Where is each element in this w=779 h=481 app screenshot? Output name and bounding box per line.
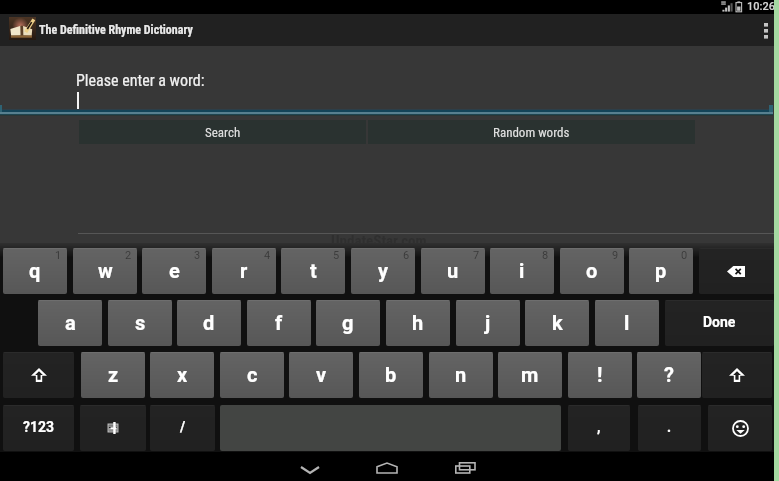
staticText: o <box>586 259 598 282</box>
button[interactable]: o <box>560 248 624 294</box>
button[interactable]: w <box>73 248 137 294</box>
button[interactable]: . <box>638 405 701 451</box>
button[interactable]: i <box>490 248 554 294</box>
button[interactable]: m <box>498 352 562 398</box>
button[interactable]: Change keyboard <box>80 405 146 451</box>
staticText: l <box>624 311 630 334</box>
staticText: ? <box>664 363 674 386</box>
button[interactable]: Emoji <box>708 405 772 451</box>
button[interactable]: z <box>81 352 145 398</box>
button[interactable]: v <box>289 352 353 398</box>
button[interactable]: g <box>316 300 380 346</box>
button[interactable]: e <box>142 248 206 294</box>
button[interactable]: y <box>351 248 415 294</box>
staticText: r <box>240 259 248 282</box>
staticText: m <box>521 363 539 386</box>
staticText: . <box>667 419 672 435</box>
button[interactable]: , <box>568 405 630 451</box>
staticText: y <box>378 259 389 282</box>
button[interactable]: s <box>108 300 172 346</box>
staticText: w <box>98 259 113 282</box>
button[interactable]: Search <box>79 120 366 144</box>
button[interactable]: j <box>456 300 520 346</box>
staticText: 5 <box>333 249 340 262</box>
button[interactable]: Done <box>665 300 774 346</box>
staticText: 8 <box>542 249 549 262</box>
button[interactable]: b <box>359 352 423 398</box>
staticText: Random words <box>493 125 570 140</box>
button[interactable]: l <box>595 300 659 346</box>
staticText: 2 <box>125 249 132 262</box>
button[interactable]: More options <box>753 14 779 46</box>
staticText: z <box>108 363 119 386</box>
button[interactable]: a <box>38 300 102 346</box>
staticText: c <box>247 363 258 386</box>
staticText: f <box>275 311 283 334</box>
button[interactable]: h <box>386 300 450 346</box>
button[interactable]: c <box>220 352 284 398</box>
staticText: 7 <box>473 249 480 262</box>
staticText: e <box>169 259 180 282</box>
button[interactable]: r <box>212 248 276 294</box>
staticText: 1 <box>55 249 62 262</box>
button[interactable]: Random words <box>368 120 695 144</box>
staticText: 4 <box>264 249 271 262</box>
staticText: , <box>597 419 601 435</box>
button[interactable]: / <box>150 405 215 451</box>
staticText: 0 <box>681 249 688 262</box>
button[interactable]: Shift <box>702 352 772 398</box>
staticText: p <box>655 259 667 282</box>
staticText: v <box>316 363 327 386</box>
button[interactable]: x <box>150 352 214 398</box>
button[interactable]: f <box>247 300 311 346</box>
staticText: j <box>485 311 491 334</box>
staticText: g <box>342 311 354 334</box>
button[interactable]: k <box>525 300 589 346</box>
staticText: 3 <box>194 249 201 262</box>
staticText: UpdateStar.com <box>331 232 427 250</box>
staticText: 6 <box>403 249 410 262</box>
staticText: q <box>29 259 41 282</box>
button[interactable]: t <box>281 248 345 294</box>
staticText: u <box>447 259 459 282</box>
staticText: d <box>203 311 215 334</box>
staticText: Done <box>703 314 736 330</box>
button[interactable]: Shift <box>3 352 74 398</box>
staticText: 9 <box>612 249 619 262</box>
staticText: Please enter a word: <box>76 71 205 90</box>
button[interactable]: Hide keyboard <box>290 452 330 481</box>
staticText: ! <box>597 363 603 386</box>
button[interactable]: ? <box>637 352 701 398</box>
button[interactable]: ! <box>568 352 632 398</box>
staticText: h <box>412 311 424 334</box>
staticText: Search <box>205 125 241 140</box>
staticText: n <box>455 363 467 386</box>
staticText: / <box>180 419 186 435</box>
button[interactable]: Home <box>367 452 407 481</box>
button[interactable]: u <box>421 248 485 294</box>
button[interactable]: p <box>629 248 693 294</box>
staticText: 10:26 <box>747 0 775 13</box>
button[interactable]: n <box>429 352 493 398</box>
staticText: i <box>519 259 525 282</box>
staticText: a <box>65 311 76 334</box>
button[interactable]: Backspace <box>699 248 775 294</box>
button[interactable]: Recent apps <box>445 452 485 481</box>
button[interactable]: d <box>177 300 241 346</box>
staticText: x <box>177 363 188 386</box>
button[interactable]: q <box>3 248 67 294</box>
staticText: b <box>385 363 397 386</box>
staticText: s <box>135 311 146 334</box>
button[interactable]: ?123 <box>3 405 74 451</box>
staticText: k <box>552 311 563 334</box>
staticText: ?123 <box>23 419 55 435</box>
staticText: t <box>310 259 317 282</box>
staticText: The Definitive Rhyme Dictionary <box>39 23 193 37</box>
